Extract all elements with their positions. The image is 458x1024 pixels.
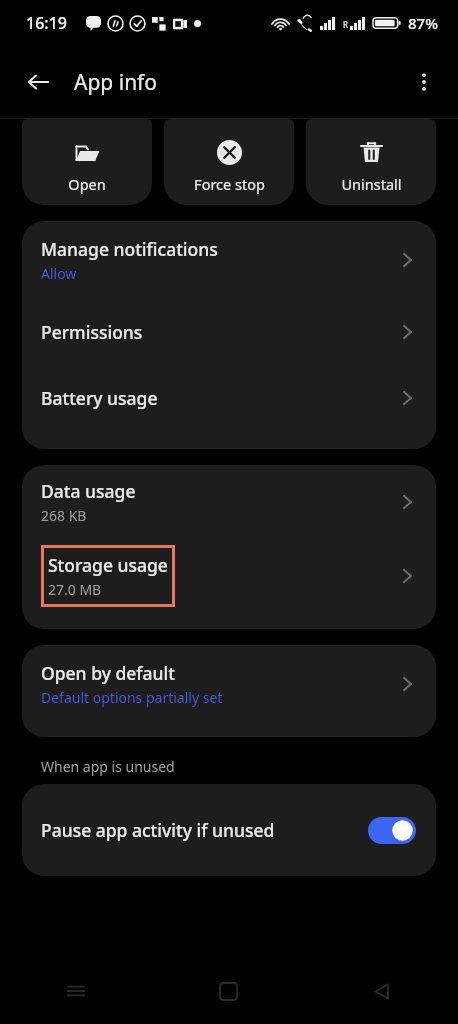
- button[interactable]: Back: [305, 958, 458, 1024]
- staticText: Data usage: [41, 479, 136, 503]
- button[interactable]: Storage usage: [22, 539, 436, 613]
- staticText: Permissions: [41, 320, 143, 344]
- staticText: Manage notifications: [41, 237, 218, 261]
- staticText: R: [343, 19, 348, 30]
- staticText: Storage usage: [48, 553, 168, 577]
- staticText: Force stop: [194, 174, 265, 194]
- staticText: Pause app activity if unused: [41, 818, 368, 842]
- button[interactable]: Data usage: [22, 465, 436, 539]
- button[interactable]: Back: [14, 58, 62, 106]
- staticText: 27.0 MB: [48, 580, 102, 599]
- button[interactable]: Battery usage: [22, 365, 436, 431]
- button[interactable]: Open by default: [22, 645, 436, 723]
- staticText: 87%: [408, 13, 438, 33]
- button[interactable]: Uninstall: [306, 119, 436, 205]
- staticText: App info: [74, 68, 158, 97]
- staticText: Allow: [41, 264, 77, 283]
- button[interactable]: Manage notifications: [22, 221, 436, 299]
- button[interactable]: More options: [400, 58, 448, 106]
- staticText: 268 KB: [41, 506, 87, 525]
- button[interactable]: Open: [22, 119, 152, 205]
- staticText: Default options partially set: [41, 688, 223, 707]
- staticText: Open: [68, 174, 106, 194]
- staticText: Uninstall: [341, 174, 402, 194]
- staticText: Battery usage: [41, 386, 158, 410]
- button[interactable]: Force stop: [164, 119, 294, 205]
- staticText: Open by default: [41, 661, 175, 685]
- button[interactable]: Home: [152, 958, 305, 1024]
- staticText: When app is unused: [41, 757, 175, 776]
- button[interactable]: Pause app activity if unused: [22, 784, 436, 876]
- staticText: 16:19: [26, 12, 67, 34]
- button[interactable]: Permissions: [22, 299, 436, 365]
- button[interactable]: Recent apps: [0, 958, 152, 1024]
